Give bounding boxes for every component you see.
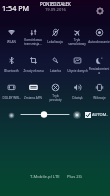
staticText: Komórkowa transmisja... [24, 38, 42, 46]
button[interactable]: Brightness [20, 110, 70, 119]
staticText: WLAN [7, 40, 16, 44]
staticText: Użycie danych [67, 69, 88, 73]
staticText: Latarka [50, 69, 61, 73]
staticText: Zmiana APN [24, 96, 42, 100]
button[interactable]: DOLBY WRL. [0, 78, 22, 100]
staticText: Autoobracanie [88, 40, 110, 44]
staticText: Wibracje [93, 96, 106, 100]
button[interactable]: Powiadomienia cic... [88, 51, 110, 73]
button[interactable]: Użycie danych [66, 51, 88, 73]
staticText: AUTOM. [92, 112, 108, 117]
staticText: Bluetooth [4, 69, 19, 73]
button[interactable]: AUTOM. [85, 110, 108, 119]
staticText: Tryb samolotowy [68, 38, 86, 46]
staticText: 1:54 PM [2, 3, 29, 13]
staticText: PONIEDZIAŁEK [40, 1, 71, 7]
button[interactable]: Settings [96, 7, 104, 15]
button[interactable]: Dźwięk [66, 78, 88, 100]
button[interactable]: Autoobracanie [88, 23, 110, 45]
button[interactable]: Komórkowa transmisja... [22, 23, 44, 45]
staticText: Plus 2G [67, 174, 82, 180]
staticText: Zrzuty ekranu [23, 69, 44, 73]
staticText: Powiadomienia cic... [88, 67, 110, 75]
staticText: 19.09.2016 [45, 7, 66, 13]
button[interactable]: Wibracje [88, 78, 110, 100]
staticText: Lokalizacja [47, 40, 63, 44]
button[interactable]: WLAN [0, 23, 22, 45]
button[interactable]: Bluetooth [0, 51, 22, 73]
staticText: Tryb prostoty [49, 94, 62, 102]
staticText: DOLBY WRL. [2, 96, 21, 100]
button[interactable]: Lokalizacja [44, 23, 66, 45]
button[interactable]: Tryb samolotowy [66, 23, 88, 45]
staticText: T-Mobile.pl LTE [30, 174, 60, 180]
button[interactable]: Latarka [44, 51, 66, 73]
button[interactable]: Zmiana APN [22, 78, 44, 100]
button[interactable]: Tryb prostoty [44, 78, 66, 100]
staticText: Dźwięk [72, 96, 83, 100]
button[interactable]: Zrzuty ekranu [22, 51, 44, 73]
